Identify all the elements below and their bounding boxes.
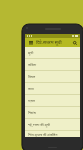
staticText: विटे-सत्तरभ सूची [36,40,62,46]
staticText: कथा [28,86,34,91]
staticText: नई_रचना की सूची [28,122,50,127]
staticText: कविता [28,62,37,67]
button[interactable]: नित्य सुभाष की संकलित [25,131,80,137]
staticText: नित्य सुभाष की संकलित [28,132,58,137]
button[interactable]: सूची [25,47,80,59]
staticText: विचार [28,74,36,79]
button[interactable]: गज़ल [25,95,80,107]
button[interactable]: Open navigation menu [27,39,34,46]
button[interactable]: Search [71,39,78,46]
button[interactable]: नई_रचना की सूची [25,119,80,131]
button[interactable]: कथा [25,83,80,95]
staticText: गज़ल [28,98,35,103]
button[interactable]: निबन्ध [25,107,80,119]
staticText: सूची [28,50,34,55]
button[interactable]: कविता [25,59,80,71]
staticText: निबन्ध [28,110,36,115]
button[interactable]: विचार [25,71,80,83]
